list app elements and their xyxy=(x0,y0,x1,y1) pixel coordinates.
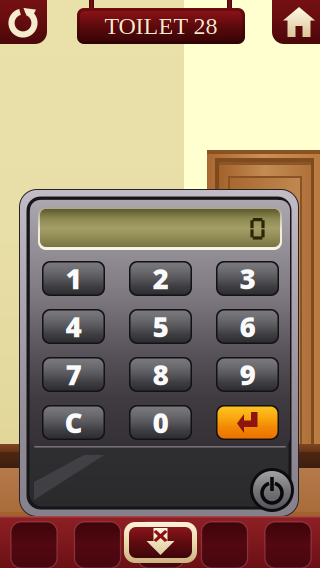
button[interactable]: 2 xyxy=(129,261,192,296)
button[interactable]: 5 xyxy=(129,309,192,344)
staticText: TOILET 28 xyxy=(104,13,217,39)
staticText: 5 xyxy=(152,308,168,345)
button[interactable]: Home xyxy=(272,0,320,44)
staticText: 1 xyxy=(65,260,81,297)
button[interactable]: 6 xyxy=(216,309,279,344)
staticText: 9 xyxy=(239,356,255,393)
staticText: 6 xyxy=(239,308,255,345)
staticText: 2 xyxy=(152,260,168,297)
button[interactable]: Enter xyxy=(216,405,279,440)
staticText: C xyxy=(64,404,82,441)
staticText: 3 xyxy=(239,260,255,297)
button[interactable]: 4 xyxy=(42,309,105,344)
button[interactable]: 0 xyxy=(129,405,192,440)
staticText: 4 xyxy=(65,308,81,345)
button[interactable]: 7 xyxy=(42,357,105,392)
staticText: 8 xyxy=(152,356,168,393)
staticText: 7 xyxy=(65,356,81,393)
staticText: 0 xyxy=(152,404,168,441)
button[interactable]: 8 xyxy=(129,357,192,392)
button[interactable]: C xyxy=(42,405,105,440)
button[interactable]: Power xyxy=(250,468,294,512)
button[interactable]: Restart xyxy=(0,0,47,44)
button[interactable]: 3 xyxy=(216,261,279,296)
button[interactable]: 9 xyxy=(216,357,279,392)
button[interactable]: Drop item xyxy=(124,522,197,563)
button[interactable]: 1 xyxy=(42,261,105,296)
